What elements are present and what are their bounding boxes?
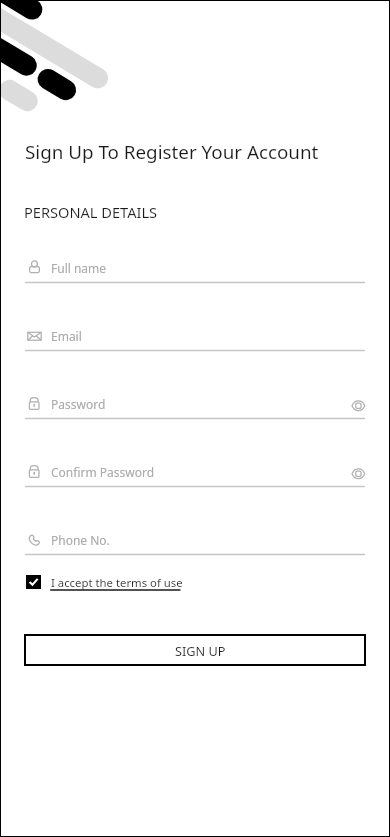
staticText: Sign Up To Register Your Account — [25, 139, 319, 165]
staticText: Full name — [51, 260, 107, 276]
button[interactable]: SIGN UP — [24, 634, 366, 666]
button[interactable]: Confirm Password — [25, 459, 365, 489]
staticText: PERSONAL DETAILS — [24, 202, 158, 222]
button[interactable]: Phone No. — [25, 527, 365, 557]
staticText: Email — [51, 328, 82, 344]
staticText: Phone No. — [51, 532, 110, 548]
staticText: Password — [51, 396, 106, 412]
button[interactable]: Password — [25, 391, 365, 421]
staticText: I accept the terms of use — [51, 575, 183, 590]
staticText: Confirm Password — [51, 464, 155, 480]
button[interactable]: I accept the terms of use — [51, 575, 183, 590]
button[interactable]: Full name — [25, 255, 365, 285]
button[interactable]: Email — [25, 323, 365, 353]
button[interactable]: I accept the terms of use — [26, 575, 41, 589]
staticText: SIGN UP — [175, 642, 226, 659]
